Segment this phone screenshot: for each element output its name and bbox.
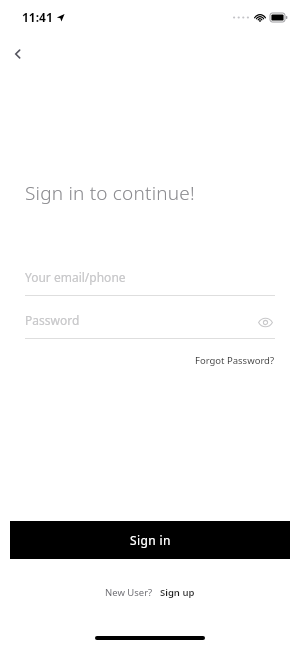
staticText: 11:41	[22, 9, 53, 25]
staticText: Sign up	[160, 586, 195, 599]
button[interactable]: Show password	[255, 312, 275, 332]
button[interactable]: Back	[6, 42, 30, 66]
staticText: Sign in to continue!	[25, 180, 195, 206]
staticText: Sign in	[130, 532, 171, 548]
button[interactable]: Sign in	[10, 521, 290, 559]
staticText: Your email/phone	[25, 269, 126, 285]
button[interactable]: Your email/phone	[25, 269, 275, 296]
button[interactable]: Forgot Password?	[193, 352, 277, 369]
staticText: Forgot Password?	[195, 354, 275, 367]
staticText: New User?	[105, 586, 153, 599]
staticText: Password	[25, 312, 80, 328]
button[interactable]: Sign up	[159, 585, 196, 600]
button[interactable]: Password	[25, 312, 275, 339]
